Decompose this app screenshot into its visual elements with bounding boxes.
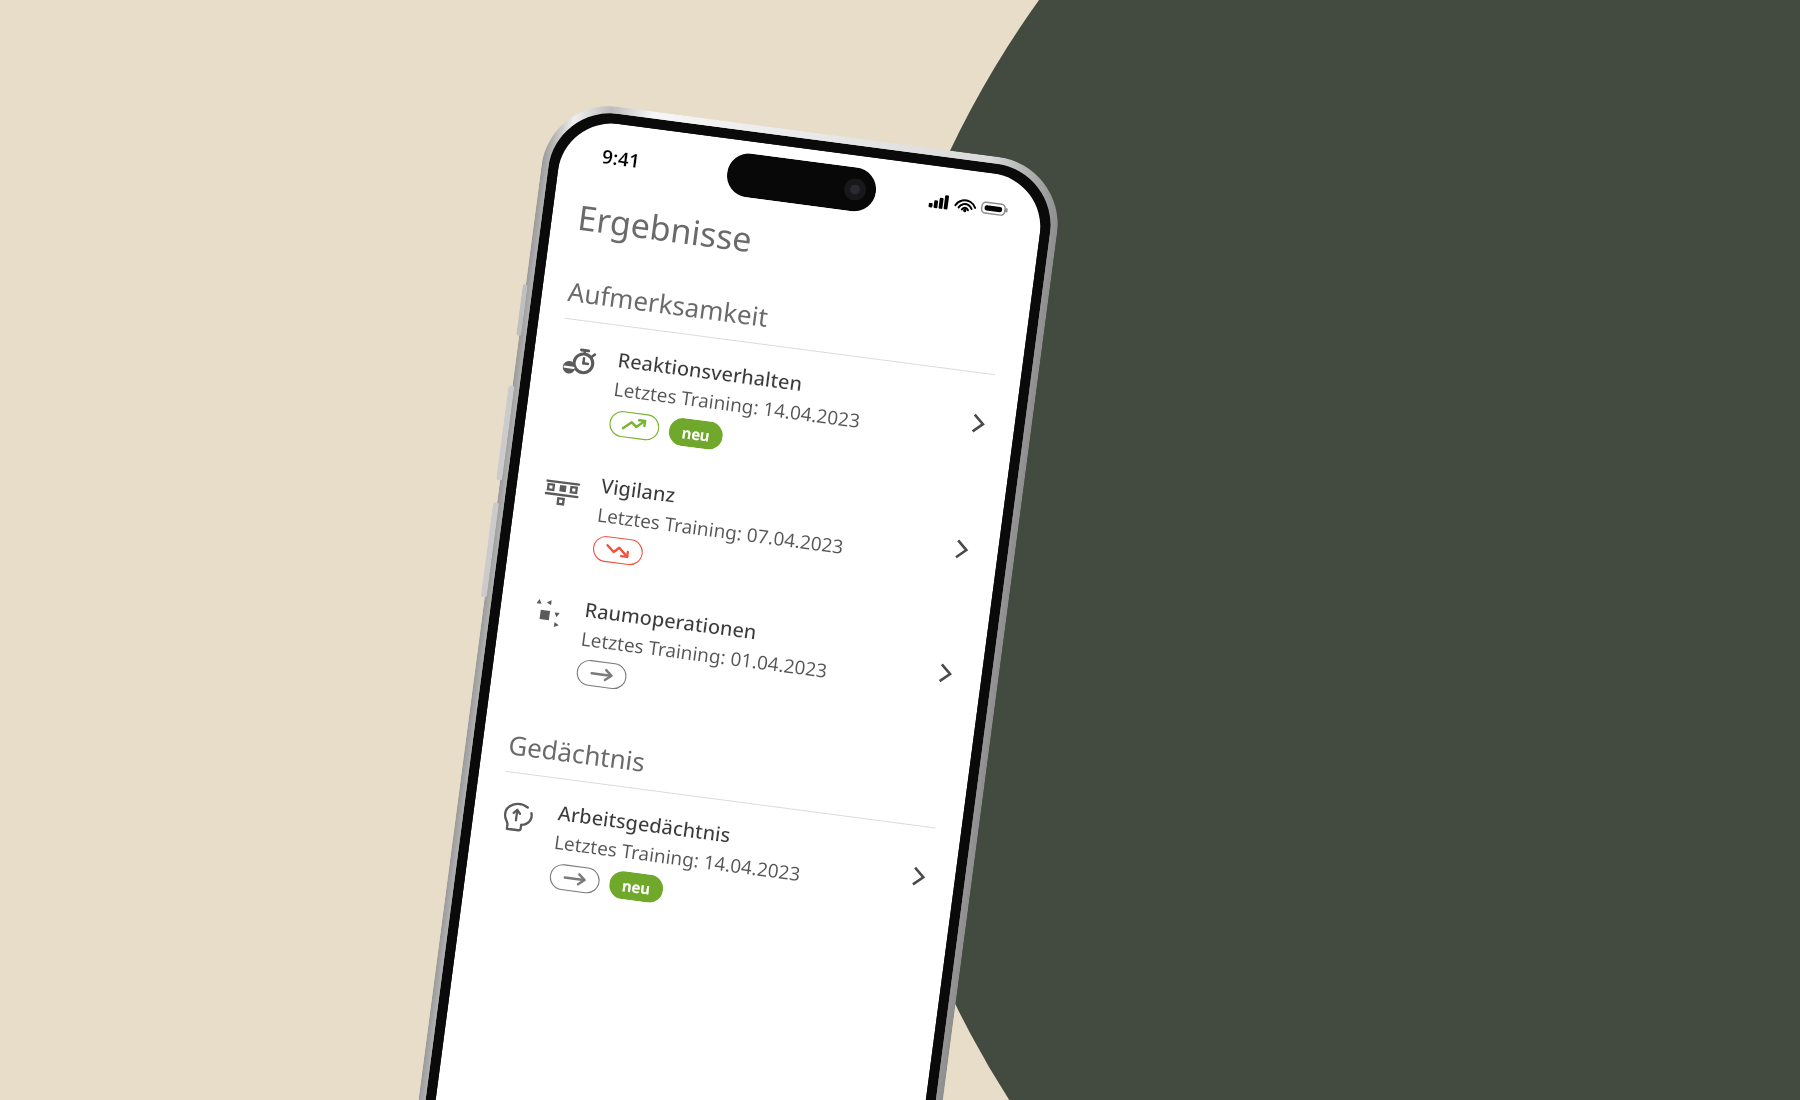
- button[interactable]: Trend: [548, 863, 601, 895]
- staticText: Gedächtnis: [506, 726, 648, 779]
- staticText: neu: [621, 875, 651, 899]
- staticText: neu: [681, 422, 711, 445]
- button[interactable]: Raumoperationen: [490, 565, 988, 752]
- staticText: Aufmerksamkeit: [566, 273, 771, 334]
- button[interactable]: Arbeitsgedächtnis: [463, 768, 961, 958]
- staticText: 9:41: [601, 143, 642, 174]
- button[interactable]: Trend: [608, 409, 661, 442]
- button[interactable]: Vigilanz: [506, 441, 1004, 629]
- staticText: Letztes Training: 01.04.2023: [579, 626, 829, 684]
- other: Details öffnen: [946, 534, 978, 565]
- button[interactable]: Reaktionsverhalten: [522, 315, 1021, 505]
- staticText: Ergebnisse: [575, 194, 756, 262]
- other: Details öffnen: [963, 408, 994, 439]
- staticText: Letztes Training: 14.04.2023: [612, 376, 862, 434]
- other: Details öffnen: [930, 658, 961, 689]
- button[interactable]: Trend: [575, 658, 628, 691]
- button[interactable]: Trend: [591, 534, 644, 567]
- staticText: Reaktionsverhalten: [616, 346, 804, 397]
- staticText: Raumoperationen: [583, 596, 758, 645]
- staticText: Letztes Training: 14.04.2023: [553, 829, 802, 887]
- staticText: Vigilanz: [599, 472, 677, 509]
- staticText: Letztes Training: 07.04.2023: [596, 502, 845, 560]
- other: Details öffnen: [903, 861, 935, 892]
- staticText: Arbeitsgedächtnis: [556, 799, 732, 849]
